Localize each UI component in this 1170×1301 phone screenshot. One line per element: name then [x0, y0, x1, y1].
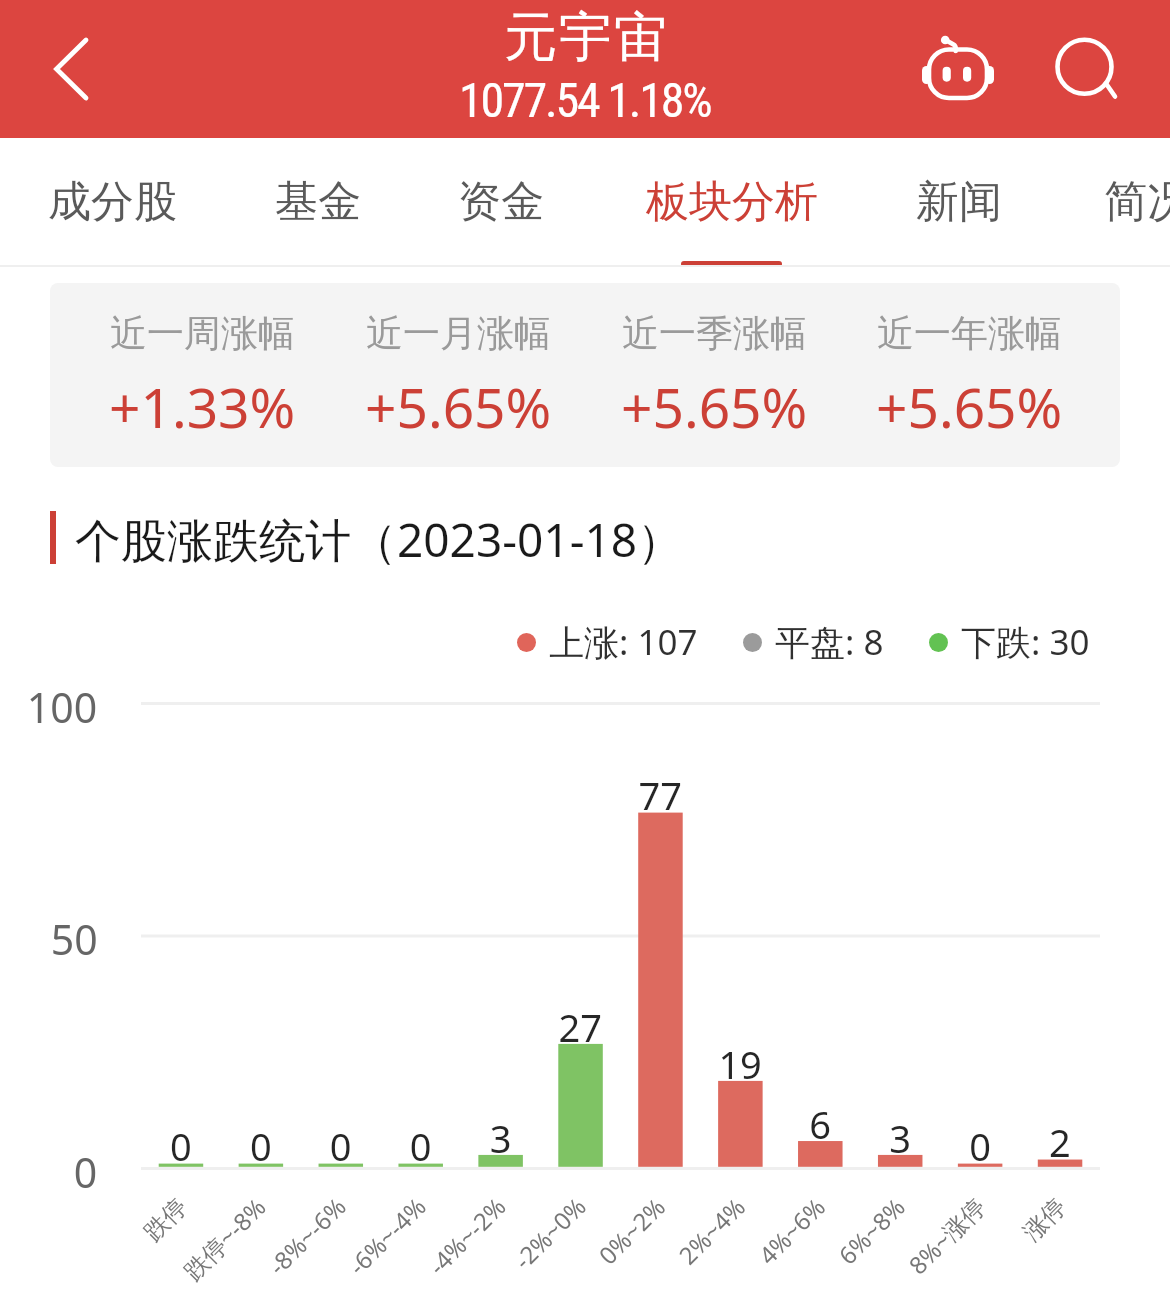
staticText: 简况 — [1104, 175, 1170, 229]
staticText: +5.65% — [621, 369, 808, 444]
button[interactable]: 平盘: 8 — [743, 618, 884, 666]
button[interactable]: 基金 — [261, 138, 375, 265]
staticText: +5.65% — [365, 369, 552, 444]
button[interactable]: 简况 — [1090, 138, 1170, 265]
staticText: 新闻 — [916, 175, 1002, 229]
button[interactable]: 下跌: 30 — [929, 618, 1090, 666]
staticText: 基金 — [275, 175, 361, 229]
staticText: 元宇宙 — [503, 4, 668, 71]
button[interactable]: 板块分析 — [632, 138, 832, 265]
button[interactable]: Search — [1034, 17, 1134, 117]
staticText: 近一年涨幅 — [877, 310, 1062, 357]
button[interactable]: 新闻 — [902, 138, 1016, 265]
button[interactable]: 近一周涨幅 — [74, 283, 330, 467]
staticText: 近一月涨幅 — [366, 310, 551, 357]
button[interactable]: AI assistant — [905, 18, 1009, 122]
staticText: +1.33% — [109, 369, 296, 444]
button[interactable]: 个股涨跌统计（2023-01-18） — [50, 508, 684, 566]
button[interactable]: 近一季涨幅 — [586, 283, 842, 467]
staticText: 上涨: 107 — [549, 618, 698, 666]
staticText: +5.65% — [876, 369, 1063, 444]
button[interactable]: Back — [0, 0, 114, 138]
staticText: 1077.54 1.18% — [459, 72, 711, 128]
button[interactable]: 上涨: 107 — [517, 618, 698, 666]
staticText: 板块分析 — [646, 175, 818, 229]
staticText: 近一季涨幅 — [622, 310, 807, 357]
staticText: 平盘: 8 — [775, 618, 884, 666]
staticText: 个股涨跌统计（2023-01-18） — [75, 508, 684, 566]
staticText: 成分股 — [48, 175, 177, 229]
button[interactable]: 近一月涨幅 — [330, 283, 586, 467]
staticText: 近一周涨幅 — [110, 310, 295, 357]
staticText: 资金 — [458, 175, 544, 229]
button[interactable]: 资金 — [444, 138, 558, 265]
button[interactable]: 近一年涨幅 — [842, 283, 1096, 467]
staticText: 下跌: 30 — [961, 618, 1090, 666]
button[interactable]: 成分股 — [34, 138, 191, 265]
